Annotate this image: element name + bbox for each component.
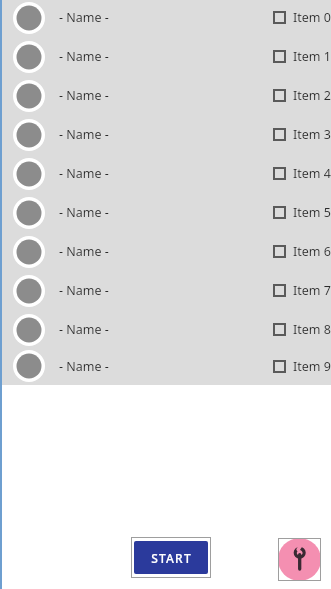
button[interactable]: - Name - <box>0 310 331 349</box>
button[interactable]: Item 4 <box>273 165 331 182</box>
button[interactable]: - Name - <box>0 193 331 232</box>
button[interactable]: - Name - <box>0 0 331 37</box>
staticText: - Name - <box>59 321 109 338</box>
button[interactable]: - Name - <box>0 37 331 76</box>
button[interactable]: Item 8 <box>273 321 331 338</box>
staticText: Item 8 <box>293 321 331 338</box>
button[interactable]: Item 9 <box>273 358 331 375</box>
staticText: - Name - <box>59 243 109 260</box>
staticText: Item 0 <box>293 9 331 26</box>
button[interactable]: START <box>134 541 208 574</box>
button[interactable]: - Name - <box>0 76 331 115</box>
button[interactable]: Item 7 <box>273 282 331 299</box>
button[interactable]: Item 6 <box>273 243 331 260</box>
staticText: - Name - <box>59 204 109 221</box>
button[interactable]: - Name - <box>0 154 331 193</box>
staticText: Item 1 <box>293 48 331 65</box>
staticText: - Name - <box>59 165 109 182</box>
button[interactable]: - Name - <box>0 349 331 383</box>
button[interactable]: Item 2 <box>273 87 331 104</box>
staticText: - Name - <box>59 358 109 375</box>
button[interactable]: Item 3 <box>273 126 331 143</box>
staticText: Item 4 <box>293 165 331 182</box>
staticText: Item 5 <box>293 204 331 221</box>
button[interactable]: Settings <box>278 538 321 581</box>
staticText: Item 9 <box>293 358 331 375</box>
staticText: Item 7 <box>293 282 331 299</box>
staticText: START <box>151 550 192 566</box>
staticText: - Name - <box>59 48 109 65</box>
staticText: Item 6 <box>293 243 331 260</box>
button[interactable]: Item 0 <box>273 9 331 26</box>
staticText: - Name - <box>59 9 109 26</box>
button[interactable]: - Name - <box>0 115 331 154</box>
staticText: Item 3 <box>293 126 331 143</box>
staticText: - Name - <box>59 282 109 299</box>
button[interactable]: Item 1 <box>273 48 331 65</box>
button[interactable]: - Name - <box>0 232 331 271</box>
button[interactable]: Item 5 <box>273 204 331 221</box>
staticText: Item 2 <box>293 87 331 104</box>
staticText: - Name - <box>59 87 109 104</box>
staticText: - Name - <box>59 126 109 143</box>
button[interactable]: - Name - <box>0 271 331 310</box>
